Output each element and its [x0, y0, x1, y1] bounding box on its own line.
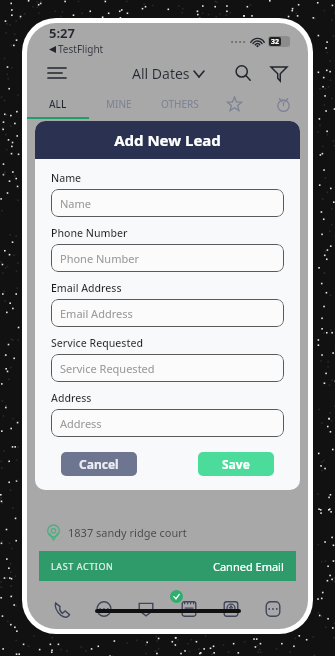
- staticText: Name: [60, 196, 92, 211]
- staticText: Phone Number: [60, 251, 139, 266]
- button[interactable]: Address: [51, 409, 284, 437]
- staticText: Service Requested: [60, 361, 155, 376]
- button[interactable]: Notes: [172, 592, 206, 626]
- button[interactable]: Call: [45, 592, 79, 626]
- staticText: Email Address: [60, 306, 133, 321]
- button[interactable]: Favorites: [210, 89, 259, 119]
- button[interactable]: Search: [228, 58, 258, 88]
- staticText: Phone Number: [51, 226, 128, 240]
- staticText: Name: [51, 171, 82, 185]
- button[interactable]: Filter: [264, 58, 294, 88]
- staticText: Email Address: [51, 281, 122, 295]
- button[interactable]: Menu: [41, 57, 73, 89]
- staticText: Canned Email: [213, 559, 284, 574]
- staticText: ALL: [49, 97, 67, 111]
- button[interactable]: Messages: [87, 592, 121, 626]
- button[interactable]: More: [256, 592, 290, 626]
- staticText: MINE: [106, 97, 132, 111]
- staticText: OTHERS: [161, 97, 199, 111]
- button[interactable]: Phone Number: [51, 244, 284, 272]
- button[interactable]: Save: [198, 452, 274, 476]
- button[interactable]: Reminders: [259, 89, 308, 119]
- button[interactable]: Name: [51, 189, 284, 217]
- staticText: Service Requested: [51, 336, 143, 350]
- button[interactable]: OTHERS: [149, 89, 210, 119]
- button[interactable]: LAST ACTION: [39, 551, 296, 581]
- staticText: Address: [60, 416, 102, 431]
- staticText: All Dates: [132, 64, 190, 83]
- staticText: 5:27: [49, 24, 75, 42]
- button[interactable]: MINE: [88, 89, 149, 119]
- staticText: 1837 sandy ridge court: [68, 525, 187, 540]
- staticText: LAST ACTION: [51, 560, 114, 572]
- button[interactable]: Add: [214, 592, 248, 626]
- staticText: Add New Lead: [114, 130, 221, 150]
- button[interactable]: Leads: [129, 592, 163, 626]
- staticText: Address: [51, 391, 92, 405]
- staticText: TestFlight: [58, 42, 104, 56]
- staticText: Cancel: [79, 456, 119, 472]
- button[interactable]: Email Address: [51, 299, 284, 327]
- button[interactable]: ALL: [27, 89, 88, 119]
- button[interactable]: Service Requested: [51, 354, 284, 382]
- staticText: 32: [271, 37, 280, 46]
- button[interactable]: Cancel: [61, 452, 137, 476]
- staticText: Save: [222, 456, 250, 472]
- button[interactable]: All Dates: [132, 64, 204, 83]
